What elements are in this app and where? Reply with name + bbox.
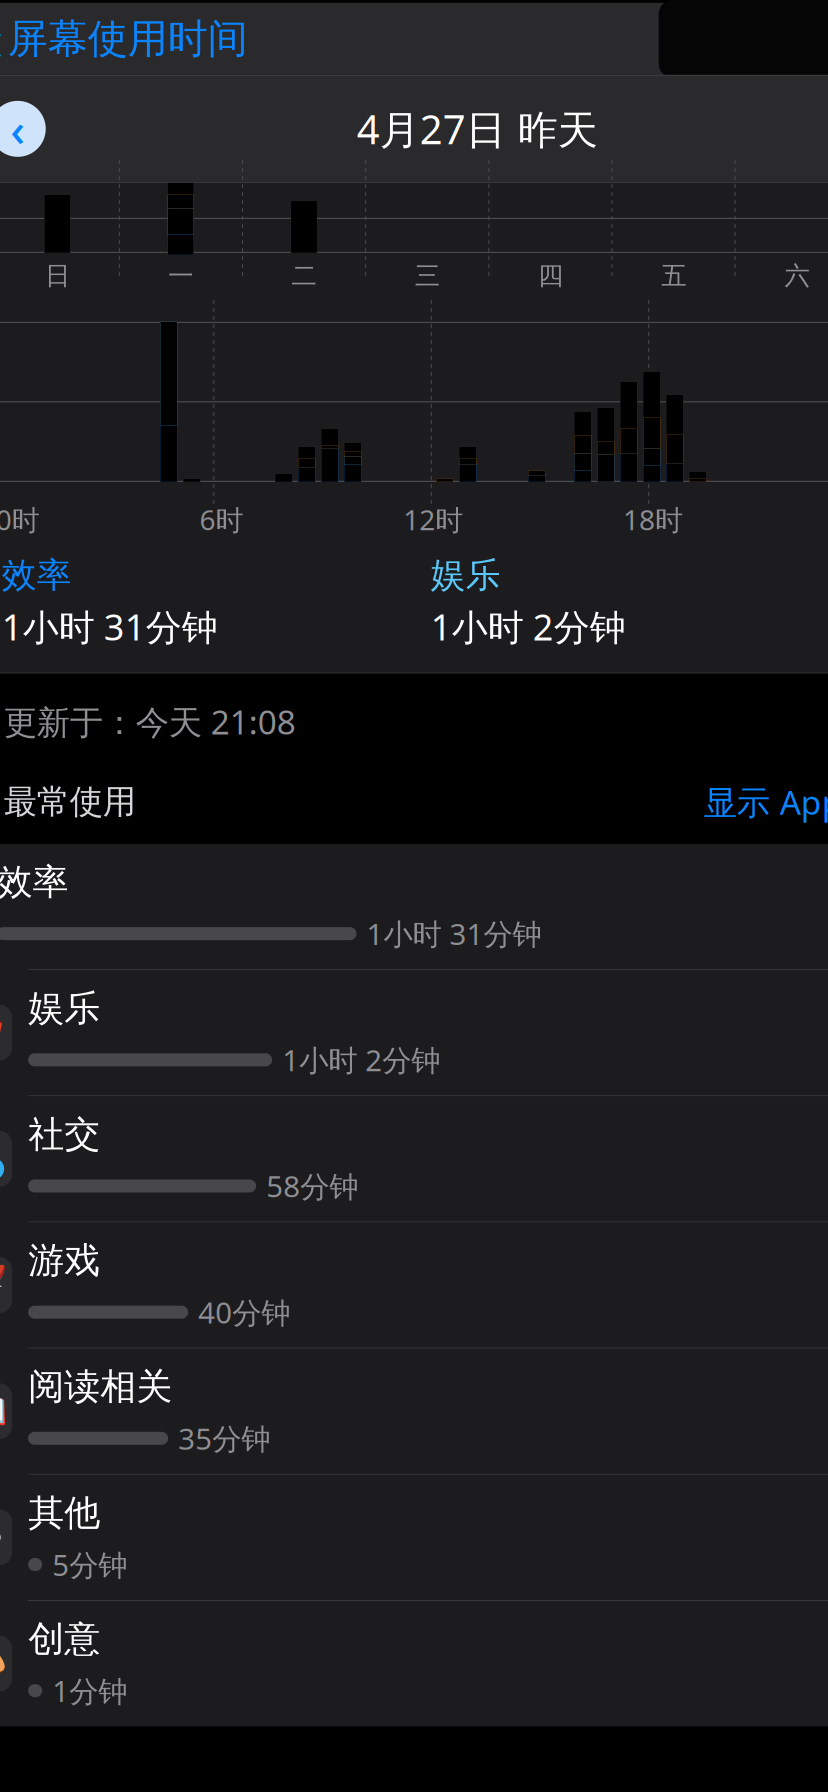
staticText: 🍿: [0, 1010, 9, 1056]
staticText: 效率: [2, 554, 72, 597]
button[interactable]: 🚀: [0, 1222, 828, 1348]
staticText: 娱乐: [28, 986, 100, 1030]
staticText: 效率: [0, 860, 68, 904]
staticText: 二: [291, 260, 316, 291]
staticText: 四: [538, 260, 563, 291]
staticText: ‹: [10, 99, 25, 159]
staticText: 屏幕使用时间: [8, 14, 248, 63]
staticText: 三: [415, 260, 440, 291]
staticText: 4月27日 昨天: [357, 102, 598, 155]
staticText: 40分钟: [198, 1293, 290, 1332]
staticText: 更新于：今天 21:08: [4, 699, 296, 744]
button[interactable]: 📖: [0, 1349, 828, 1474]
staticText: 1分钟: [52, 1671, 127, 1710]
button[interactable]: ➤: [0, 844, 828, 969]
staticText: 1小时 31分钟: [2, 603, 218, 650]
staticText: 娱乐: [431, 554, 501, 597]
staticText: 📖: [0, 1390, 7, 1433]
staticText: 1小时 2分钟: [431, 603, 626, 650]
staticText: 0时: [0, 501, 40, 538]
button[interactable]: 其他: [0, 1475, 828, 1600]
staticText: 5分钟: [52, 1545, 127, 1584]
staticText: 阅读相关: [28, 1365, 172, 1409]
staticText: 游戏: [28, 1238, 100, 1283]
staticText: 18时: [623, 501, 683, 538]
staticText: 六: [785, 260, 810, 291]
staticText: 创意: [28, 1617, 100, 1661]
button[interactable]: ‹: [0, 0, 256, 84]
staticText: 58分钟: [266, 1166, 358, 1205]
staticText: 35分钟: [178, 1419, 270, 1458]
staticText: 🚀: [0, 1264, 7, 1306]
staticText: 一: [168, 260, 193, 291]
staticText: 五: [661, 260, 686, 291]
staticText: 12时: [403, 501, 463, 538]
staticText: 显示 App 与网站: [704, 780, 828, 824]
staticText: 最常使用: [4, 781, 136, 822]
staticText: 社交: [28, 1112, 100, 1156]
button[interactable]: 前一天: [0, 101, 46, 157]
staticText: 1小时 31分钟: [366, 914, 541, 953]
staticText: 6时: [199, 501, 243, 538]
button[interactable]: 🎨: [0, 1601, 828, 1726]
staticText: 1小时 2分钟: [282, 1040, 440, 1079]
staticText: 日: [45, 260, 70, 291]
staticText: ‹: [0, 0, 4, 78]
staticText: 其他: [28, 1491, 100, 1535]
button[interactable]: 显示 App 与网站: [704, 776, 828, 828]
staticText: 🎨: [0, 1642, 7, 1685]
button[interactable]: ♥: [0, 1096, 828, 1221]
button[interactable]: 🍿: [0, 970, 828, 1095]
